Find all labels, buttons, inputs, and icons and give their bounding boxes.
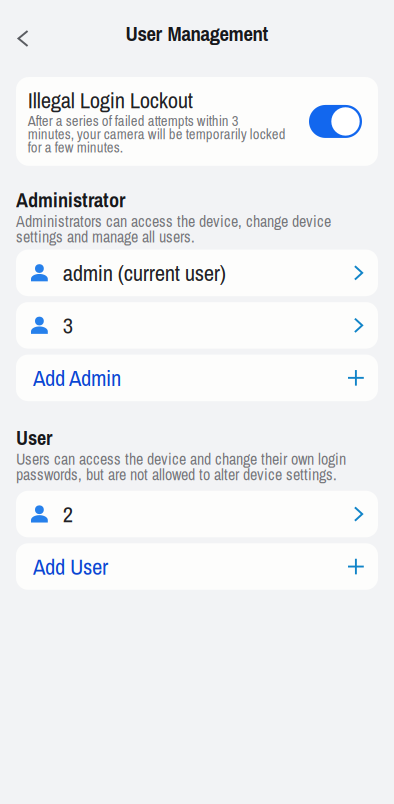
staticText: Users can access the device and change t… (16, 448, 346, 470)
staticText: User Management (125, 19, 268, 47)
staticText: minutes, your camera will be temporarily… (28, 124, 286, 144)
button[interactable]: Add Admin (16, 355, 378, 401)
staticText: Administrators can access the device, ch… (16, 210, 331, 232)
button[interactable]: 2 (16, 491, 378, 537)
staticText: Add User (33, 551, 108, 582)
staticText: Illegal Login Lockout (28, 85, 193, 115)
staticText: 2 (63, 499, 73, 529)
button[interactable]: Illegal Login Lockout (309, 105, 362, 138)
staticText: settings and manage all users. (16, 226, 195, 248)
staticText: passwords, but are not allowed to alter … (16, 464, 337, 485)
button[interactable]: 3 (16, 302, 378, 349)
staticText: User (16, 424, 52, 451)
staticText: admin (current user) (63, 258, 226, 288)
staticText: 3 (63, 310, 73, 341)
staticText: for a few minutes. (28, 137, 123, 157)
button[interactable]: Back (3, 18, 43, 58)
button[interactable]: Add User (16, 543, 378, 590)
staticText: Add Admin (33, 363, 121, 393)
staticText: After a series of failed attempts within… (28, 111, 239, 131)
button[interactable]: admin (current user) (16, 250, 378, 296)
staticText: Administrator (16, 186, 125, 214)
